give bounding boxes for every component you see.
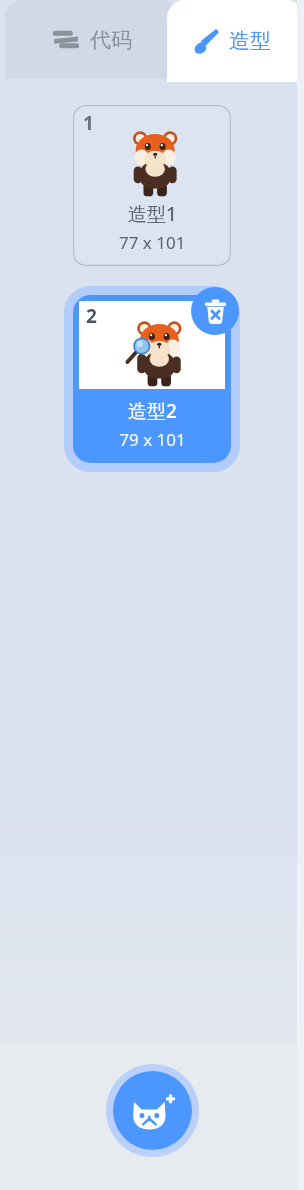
staticText: 2	[86, 303, 97, 329]
staticText: 造型1	[128, 201, 177, 227]
staticText: 77 x 101	[119, 231, 186, 254]
button[interactable]: Delete costume	[191, 287, 239, 335]
staticText: 造型	[229, 28, 271, 54]
staticText: 79 x 101	[119, 428, 186, 451]
button[interactable]: 代码	[5, 0, 179, 79]
button[interactable]: Add costume	[106, 1064, 199, 1157]
button[interactable]: 2	[73, 295, 231, 463]
staticText: 1	[83, 110, 94, 136]
button[interactable]: 造型	[167, 0, 304, 82]
button[interactable]: 1	[73, 105, 231, 266]
staticText: 代码	[90, 27, 132, 53]
staticText: 造型2	[128, 398, 177, 424]
